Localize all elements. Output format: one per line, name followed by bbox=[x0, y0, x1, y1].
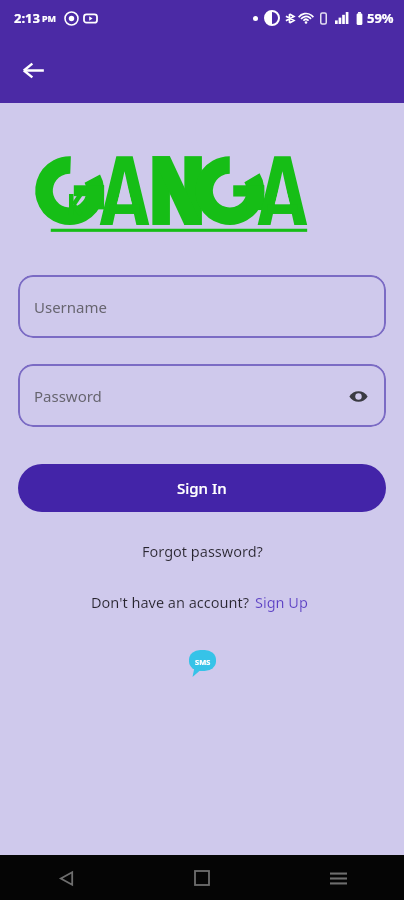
staticText: SMS bbox=[195, 657, 211, 667]
button[interactable]: Password bbox=[18, 364, 386, 427]
staticText: 2:13 bbox=[14, 9, 40, 27]
button[interactable]: SMS bbox=[185, 646, 219, 680]
button[interactable]: Recents bbox=[318, 858, 358, 898]
button[interactable]: Show password bbox=[344, 382, 372, 410]
staticText: 59% bbox=[367, 9, 394, 27]
button[interactable]: Forgot password? bbox=[132, 536, 273, 566]
staticText: Password bbox=[34, 386, 102, 406]
staticText: Username bbox=[34, 297, 107, 317]
button[interactable]: Sign Up bbox=[249, 588, 314, 616]
button[interactable]: Back bbox=[12, 49, 54, 91]
button[interactable]: Username bbox=[18, 275, 386, 338]
staticText: PM bbox=[42, 12, 57, 24]
staticText: Don't have an account? bbox=[91, 592, 249, 612]
button[interactable]: Home bbox=[182, 858, 222, 898]
staticText: Forgot password? bbox=[142, 541, 263, 561]
button[interactable]: Back bbox=[46, 858, 86, 898]
staticText: Sign In bbox=[177, 478, 227, 498]
button[interactable]: Sign In bbox=[18, 464, 386, 512]
staticText: Sign Up bbox=[255, 592, 308, 612]
